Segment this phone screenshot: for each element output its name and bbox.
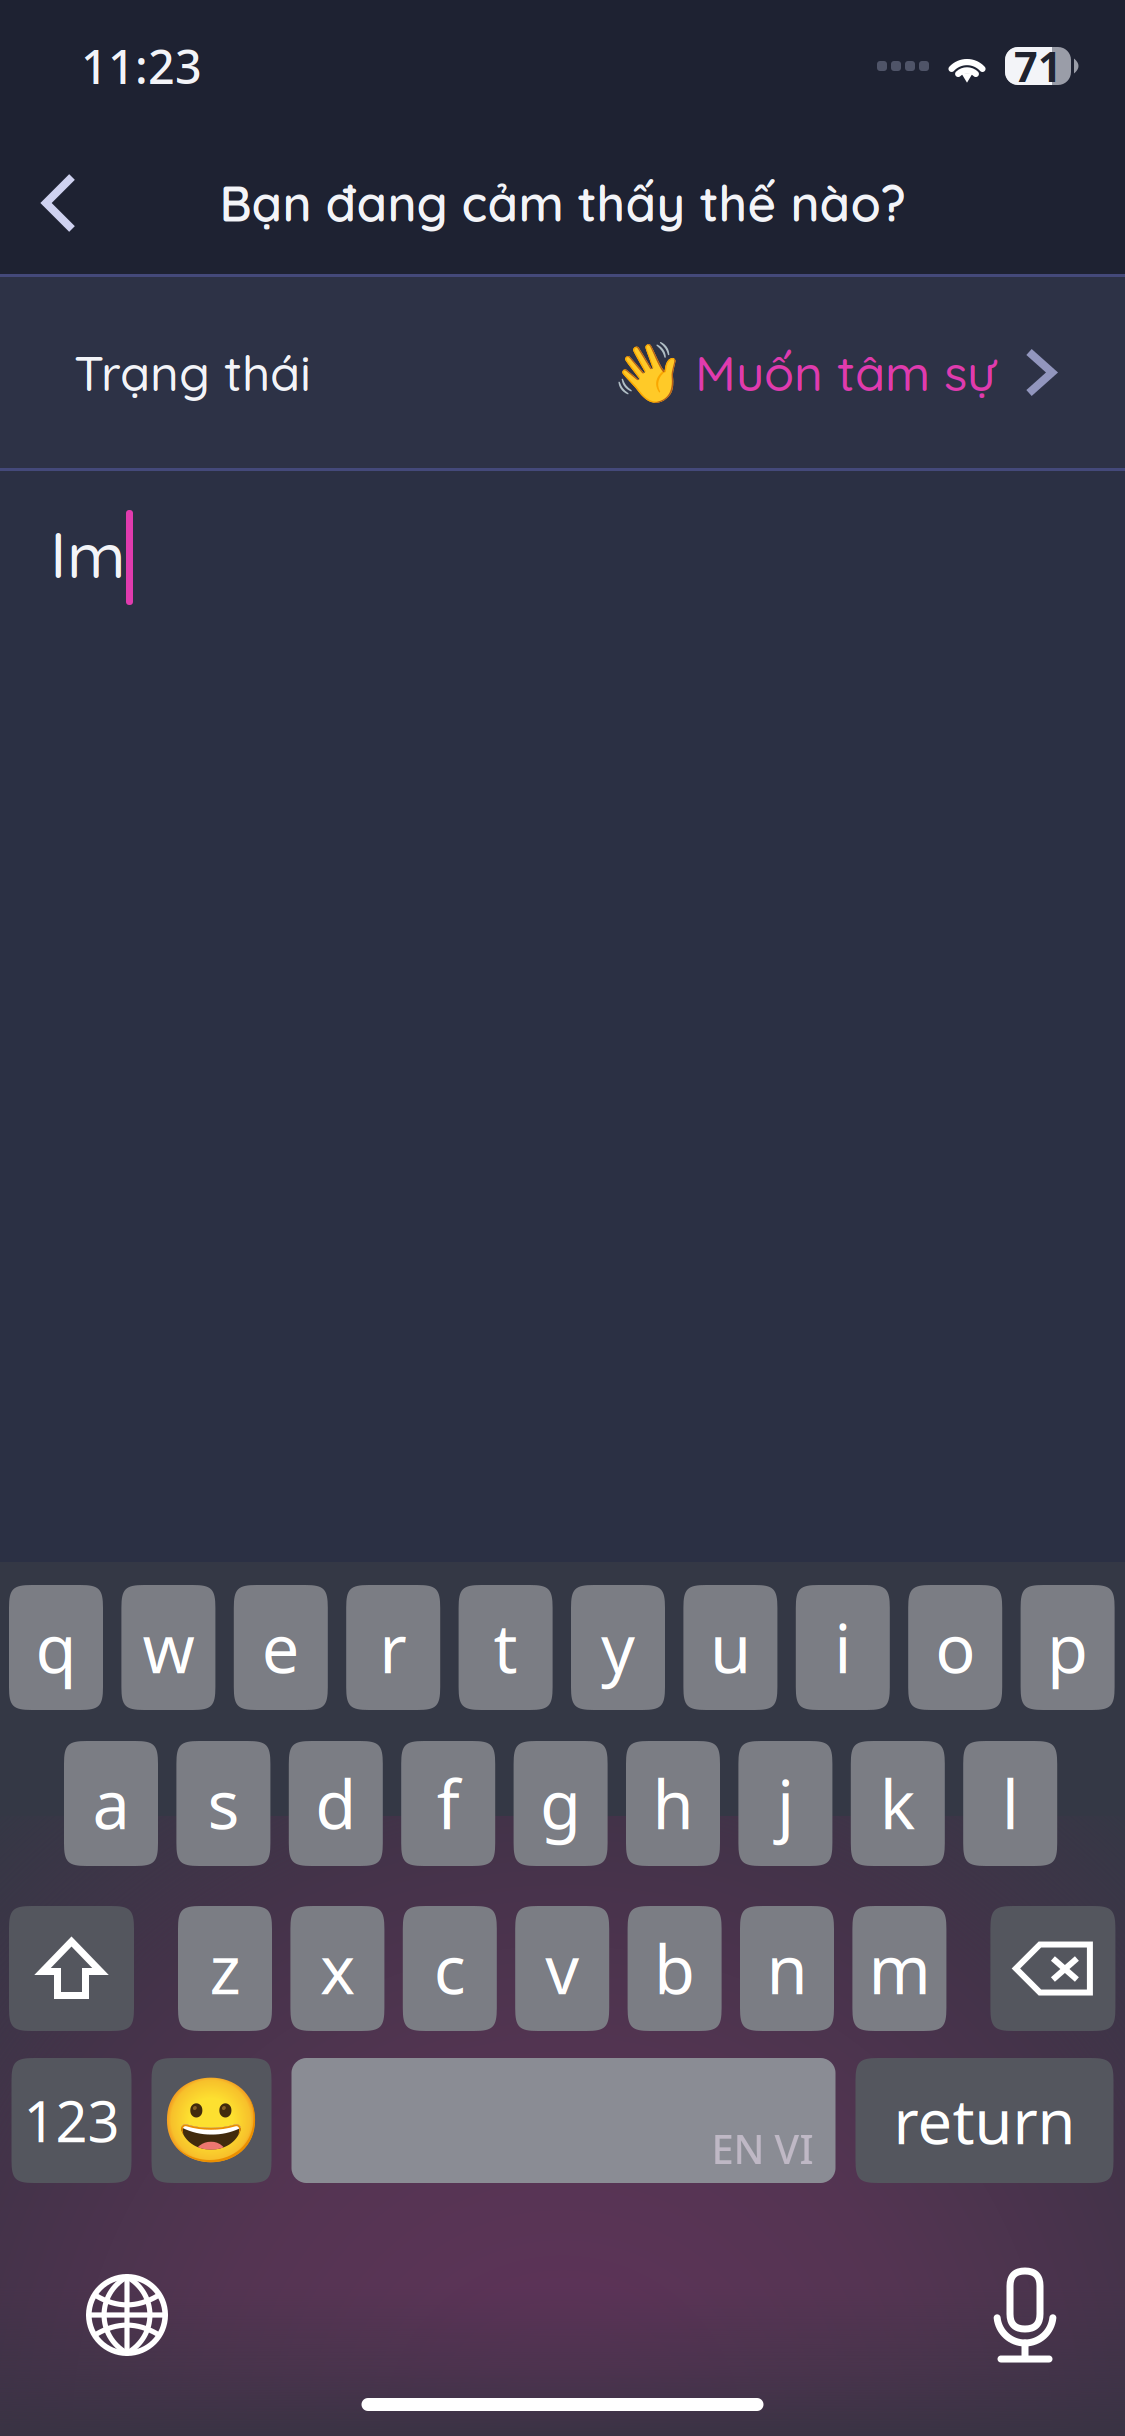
staticText: EN VI [711,2122,813,2175]
button[interactable]: t [459,1585,553,1710]
button[interactable]: c [403,1906,497,2031]
button[interactable]: u [683,1585,777,1710]
button[interactable]: n [740,1906,834,2031]
staticText: f [437,1759,460,1848]
staticText: j [777,1759,794,1848]
staticText: 123 [23,2083,119,2158]
staticText: 11:23 [81,35,202,97]
staticText: 71 [1014,39,1062,93]
staticText: Trạng thái [74,342,311,403]
staticText: n [766,1924,807,2013]
button[interactable]: space [291,2058,835,2183]
button[interactable]: q [9,1585,103,1710]
staticText: v [545,1924,579,2013]
button[interactable]: f [401,1741,495,1866]
button[interactable]: return [855,2058,1113,2183]
button[interactable]: h [626,1741,720,1866]
staticText: k [880,1759,916,1848]
staticText: 👋 [612,339,685,406]
button[interactable]: x [290,1906,384,2031]
button[interactable]: z [178,1906,272,2031]
button[interactable]: Delete [990,1906,1115,2031]
button[interactable]: v [515,1906,609,2031]
button[interactable]: b [628,1906,722,2031]
staticText: e [262,1603,300,1692]
staticText: p [1047,1603,1088,1692]
staticText: Im [50,514,126,594]
staticText: a [92,1759,129,1848]
button[interactable]: m [852,1906,946,2031]
button[interactable]: r [346,1585,440,1710]
staticText: w [142,1603,194,1692]
button[interactable]: g [514,1741,608,1866]
button[interactable]: Emoji keyboard [151,2058,271,2183]
staticText: l [1002,1759,1019,1848]
button[interactable]: j [738,1741,832,1866]
staticText: m [868,1924,930,2013]
button[interactable]: i [796,1585,890,1710]
staticText: h [652,1759,693,1848]
staticText: x [320,1924,355,2013]
staticText: y [601,1603,635,1692]
staticText: s [207,1759,239,1848]
staticText: z [209,1924,240,2013]
button[interactable]: d [289,1741,383,1866]
button[interactable]: l [963,1741,1057,1866]
staticText: c [434,1924,466,2013]
staticText: u [710,1603,751,1692]
staticText: t [494,1603,518,1692]
staticText: i [834,1603,851,1692]
button[interactable]: Back [0,147,118,259]
button[interactable]: s [176,1741,270,1866]
staticText: b [654,1924,695,2013]
button[interactable]: Next keyboard [0,2260,194,2370]
button[interactable]: a [64,1741,158,1866]
button[interactable]: Shift [9,1906,134,2031]
staticText: q [35,1603,76,1692]
staticText: 😀 [160,2073,263,2168]
button[interactable]: p [1021,1585,1115,1710]
button[interactable]: Trạng thái [0,277,1125,468]
button[interactable]: Dictation [971,2260,1125,2370]
button[interactable]: o [908,1585,1002,1710]
staticText: o [935,1603,975,1692]
staticText: d [315,1759,356,1848]
button[interactable]: w [121,1585,215,1710]
staticText: return [893,2080,1075,2161]
button[interactable]: k [851,1741,945,1866]
staticText: g [540,1759,581,1848]
staticText: r [379,1603,407,1692]
staticText: Muốn tâm sự [695,342,995,403]
button[interactable]: y [571,1585,665,1710]
staticText: Bạn đang cảm thấy thế nào? [219,172,905,234]
button[interactable]: e [234,1585,328,1710]
button[interactable]: 123 [11,2058,131,2183]
